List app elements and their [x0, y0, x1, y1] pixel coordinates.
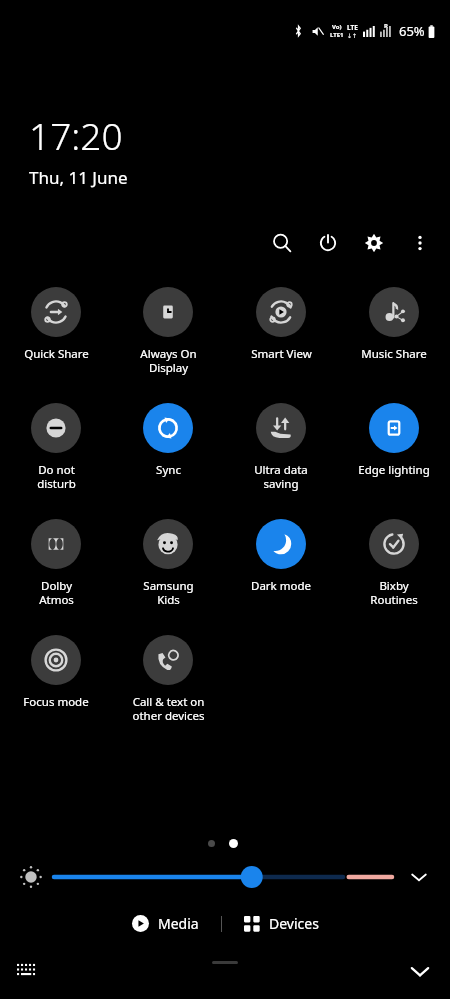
button[interactable]: Ultra data saving — [235, 403, 327, 491]
button[interactable]: Sync — [122, 403, 214, 478]
staticText: Thu, 11 June — [29, 166, 128, 189]
staticText: LTE1 — [330, 31, 344, 39]
staticText: Edge lighting — [358, 462, 430, 478]
staticText: Ultra data saving — [254, 462, 308, 491]
staticText: Quick Share — [24, 346, 89, 362]
staticText: 17:20 — [29, 110, 123, 160]
button[interactable]: Smart View — [235, 287, 327, 362]
staticText: 65% — [399, 22, 425, 40]
staticText: Call & text on other devices — [132, 694, 205, 723]
button[interactable]: Edge lighting — [348, 403, 440, 478]
staticText: Vo) — [332, 23, 342, 31]
button[interactable]: Focus mode — [10, 635, 102, 710]
staticText: LTE — [347, 23, 358, 32]
staticText: Dark mode — [251, 578, 311, 594]
staticText: Bixby Routines — [370, 578, 418, 607]
button[interactable]: Search — [260, 221, 304, 265]
staticText: Media — [158, 914, 199, 933]
button[interactable]: Power off — [306, 221, 350, 265]
button[interactable]: Call & text on other devices — [122, 635, 214, 723]
button[interactable]: Media — [124, 908, 207, 939]
button[interactable]: Quick Share — [10, 287, 102, 362]
staticText: Sync — [156, 462, 181, 478]
button[interactable]: Bixby Routines — [348, 519, 440, 607]
button[interactable]: Samsung Kids — [122, 519, 214, 607]
staticText: Samsung Kids — [143, 578, 194, 607]
staticText: Devices — [269, 914, 319, 933]
button[interactable]: More options — [398, 221, 442, 265]
button[interactable]: Settings — [352, 221, 396, 265]
button[interactable]: Do not disturb — [10, 403, 102, 491]
staticText: Smart View — [251, 346, 312, 362]
staticText: Focus mode — [23, 694, 89, 710]
button[interactable]: Always On Display — [122, 287, 214, 375]
staticText: Do not disturb — [37, 462, 76, 491]
button[interactable]: Dark mode — [235, 519, 327, 594]
button[interactable]: Collapse quick settings — [400, 951, 440, 991]
staticText: Music Share — [361, 346, 427, 362]
staticText: R — [384, 22, 388, 30]
button[interactable] — [54, 865, 392, 889]
button[interactable]: Expand brightness settings — [402, 860, 436, 894]
button[interactable]: Devices — [236, 908, 327, 939]
button[interactable]: Dolby Atmos — [10, 519, 102, 607]
staticText: Dolby Atmos — [39, 578, 74, 607]
staticText: Always On Display — [140, 346, 197, 375]
staticText: ↓↑ — [347, 32, 358, 39]
button[interactable]: Keyboard — [8, 953, 44, 989]
button[interactable]: Music Share — [348, 287, 440, 362]
